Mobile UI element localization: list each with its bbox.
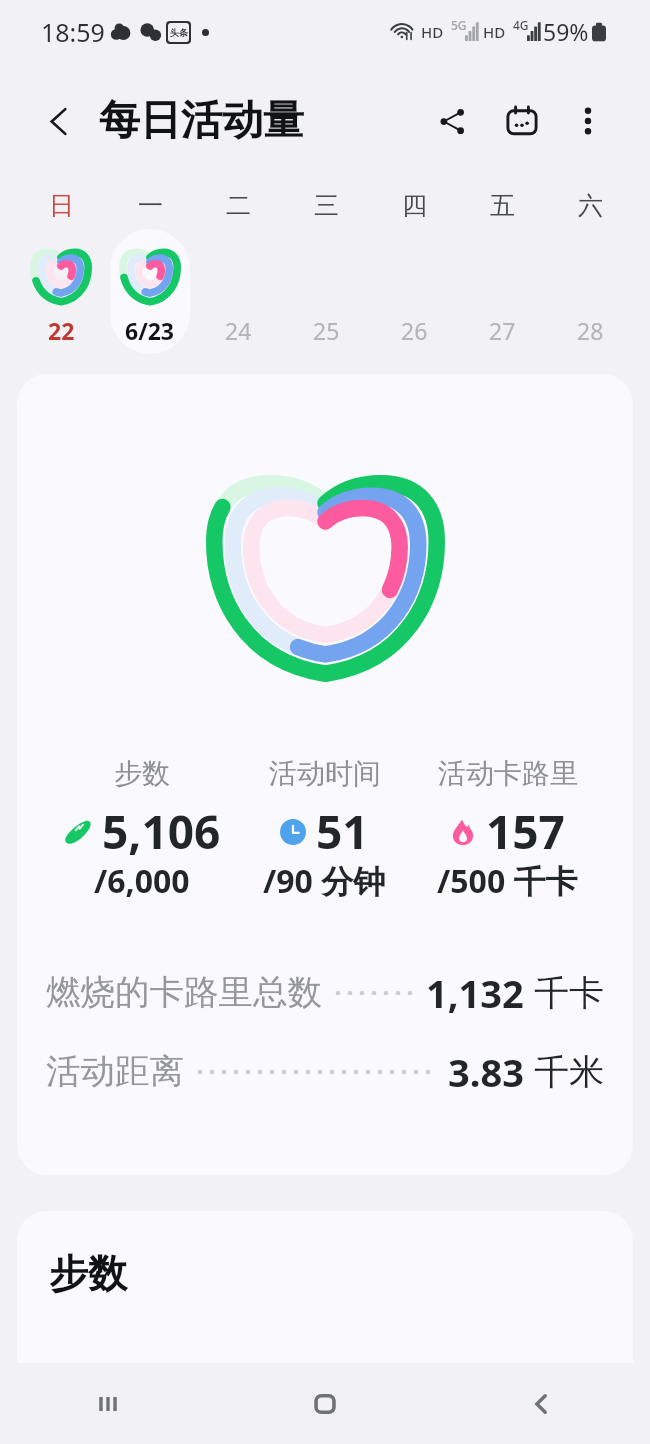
staticText: 头条 — [170, 27, 188, 38]
staticText: 千卡 — [534, 971, 604, 1015]
staticText: 步数 — [114, 756, 170, 791]
staticText: HD — [483, 22, 506, 42]
staticText: 157 — [486, 800, 565, 863]
button[interactable]: 六 — [559, 179, 621, 369]
button[interactable]: 步数 — [17, 1211, 633, 1431]
staticText: 燃烧的卡路里总数 — [46, 971, 322, 1014]
staticText: 二 — [226, 190, 251, 221]
staticText: 28 — [577, 315, 604, 346]
staticText: 日 — [49, 190, 74, 221]
staticText: 27 — [489, 315, 516, 346]
staticText: 活动卡路里 — [438, 756, 578, 791]
button[interactable]: Calendar — [490, 89, 554, 153]
staticText: 26 — [401, 315, 428, 346]
staticText: 5,106 — [102, 800, 221, 863]
staticText: /90 分钟 — [263, 859, 386, 903]
button[interactable]: More options — [558, 91, 618, 151]
staticText: 活动时间 — [269, 756, 381, 791]
button[interactable]: 五 — [471, 179, 533, 369]
button[interactable]: 二 — [207, 179, 269, 369]
staticText: 三 — [314, 190, 339, 221]
staticText: HD — [421, 22, 444, 42]
button[interactable]: 三 — [295, 179, 357, 369]
staticText: 六 — [578, 190, 603, 221]
button[interactable]: Recent apps — [0, 1363, 216, 1444]
button[interactable]: Back — [433, 1363, 650, 1444]
staticText: 五 — [490, 190, 515, 221]
staticText: 25 — [313, 315, 340, 346]
staticText: 四 — [402, 190, 427, 221]
staticText: 51 — [316, 800, 369, 863]
button[interactable]: Home — [216, 1363, 433, 1444]
staticText: 18:59 — [41, 15, 105, 49]
staticText: 一 — [138, 190, 163, 221]
staticText: 6/23 — [125, 315, 175, 346]
button[interactable]: 日 — [30, 179, 92, 369]
staticText: 4G — [513, 17, 529, 33]
staticText: 3.83 — [448, 1046, 524, 1098]
staticText: 1,132 — [426, 967, 524, 1019]
staticText: /500 千卡 — [437, 859, 578, 903]
staticText: 59% — [543, 16, 589, 47]
staticText: 每日活动量 — [99, 95, 304, 147]
staticText: 千米 — [534, 1050, 604, 1094]
button[interactable]: 四 — [383, 179, 445, 369]
staticText: 5G — [451, 17, 467, 33]
button[interactable]: Back — [26, 89, 90, 153]
button[interactable]: 一 — [119, 179, 181, 369]
staticText: /6,000 — [94, 859, 190, 903]
staticText: 22 — [48, 315, 75, 346]
button[interactable]: 步数 — [17, 374, 633, 1175]
staticText: 活动距离 — [46, 1050, 184, 1093]
staticText: 步数 — [49, 1249, 127, 1298]
staticText: 24 — [225, 315, 252, 346]
button[interactable]: Share — [420, 89, 484, 153]
